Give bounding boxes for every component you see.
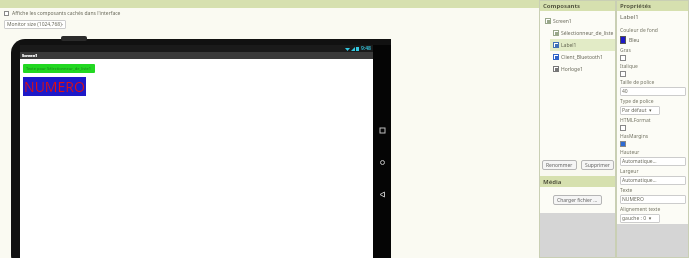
button[interactable]: Monitor size (1024,768) [4, 20, 66, 29]
button[interactable]: Par défaut ▾ [620, 106, 660, 115]
button[interactable]: Renommer [542, 160, 577, 170]
button[interactable]: Texte pour Sélectionneur_de_liste1 [23, 64, 95, 73]
staticText: Composants [543, 2, 581, 10]
button[interactable]: Screen1 [542, 15, 616, 27]
button[interactable]: Supprimer [581, 160, 614, 170]
staticText: Renommer [546, 162, 573, 169]
button[interactable]: Checked [620, 141, 626, 147]
staticText: HasMargins [620, 133, 649, 140]
button[interactable]: Back [375, 187, 389, 201]
staticText: NUMERO [24, 77, 85, 96]
staticText: Propriétés [620, 2, 652, 10]
staticText: Automatique... [622, 158, 657, 165]
staticText: Client_Bluetooth1 [561, 54, 603, 61]
staticText: Sélectionneur_de_liste1 [561, 30, 616, 37]
staticText: Taille de police [620, 79, 655, 86]
button[interactable]: Label1 [550, 39, 616, 51]
staticText: Couleur de fond [620, 27, 658, 34]
staticText: Italique [620, 63, 638, 70]
staticText: Monitor size (1024,768) [7, 21, 62, 28]
staticText: Label1 [561, 42, 577, 49]
staticText: Texte [620, 187, 633, 194]
button[interactable]: Sélectionneur_de_liste1 [550, 27, 616, 39]
staticText: NUMERO [622, 196, 644, 203]
staticText: Gras [620, 47, 631, 54]
button[interactable]: Recent apps [375, 123, 389, 137]
staticText: Type de police [620, 98, 654, 105]
staticText: Alignement texte [620, 206, 661, 213]
button[interactable]: Bleu [620, 35, 640, 45]
button[interactable]: Unchecked [620, 125, 626, 131]
button[interactable]: Affiche les composants cachés dans l'int… [4, 10, 121, 17]
button[interactable]: gauche : 0 ▾ [620, 214, 660, 223]
staticText: Affiche les composants cachés dans l'int… [12, 10, 121, 17]
staticText: Screen1 [22, 53, 38, 58]
staticText: Texte pour Sélectionneur_de_liste1 [26, 66, 92, 71]
button[interactable]: 40 [620, 87, 686, 96]
staticText: Horloge1 [561, 66, 583, 73]
staticText: Bleu [629, 37, 640, 44]
button[interactable]: Charger fichier ... [553, 195, 602, 205]
staticText: Label1 [620, 13, 639, 21]
button[interactable]: Horloge1 [550, 63, 616, 75]
button[interactable]: Unchecked [620, 55, 626, 61]
button[interactable]: Home [375, 155, 389, 169]
staticText: Par défaut ▾ [622, 107, 652, 114]
staticText: Largeur [620, 168, 639, 175]
button[interactable]: Automatique... [620, 157, 686, 166]
button[interactable]: Client_Bluetooth1 [550, 51, 616, 63]
staticText: Charger fichier ... [557, 197, 598, 204]
button[interactable]: Automatique... [620, 176, 686, 185]
button[interactable]: Unchecked [620, 71, 626, 77]
staticText: gauche : 0 ▾ [622, 215, 652, 222]
button[interactable]: NUMERO [620, 195, 686, 204]
staticText: Supprimer [585, 162, 610, 169]
staticText: Screen1 [553, 18, 572, 25]
staticText: 40 [622, 88, 628, 95]
staticText: 9:48 [361, 45, 371, 52]
staticText: Automatique... [622, 177, 657, 184]
staticText: Média [543, 178, 562, 186]
staticText: Hauteur [620, 149, 640, 156]
staticText: HTMLFormat [620, 117, 651, 124]
button[interactable]: NUMERO [23, 77, 86, 96]
